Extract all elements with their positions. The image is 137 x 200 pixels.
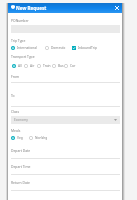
staticText: Car: [70, 64, 76, 68]
button[interactable]: Air: [23, 64, 35, 68]
staticText: Class: [11, 109, 20, 114]
staticText: To: [11, 93, 15, 98]
staticText: PONumber: [11, 18, 29, 23]
staticText: Depart Time: [11, 164, 31, 169]
staticText: New Request: [16, 5, 47, 11]
staticText: InboundTrip: [78, 46, 97, 50]
button[interactable]: InboundTrip: [71, 46, 97, 50]
staticText: Economy: [14, 118, 29, 122]
staticText: International: [17, 46, 37, 50]
staticText: Depart Date: [11, 148, 31, 153]
button[interactable]: Veg: [10, 136, 23, 140]
staticText: Bus: [58, 64, 64, 68]
staticText: Domestic: [51, 46, 66, 50]
staticText: All: [18, 64, 22, 68]
button[interactable]: [8, 145, 122, 159]
button[interactable]: Economy: [14, 116, 117, 124]
button[interactable]: [8, 177, 122, 191]
staticText: Meals: [11, 128, 21, 133]
button[interactable]: NonVeg: [28, 136, 48, 140]
staticText: Transport Type: [11, 54, 35, 59]
staticText: Veg: [17, 136, 23, 140]
button[interactable]: Close: [111, 3, 122, 13]
staticText: Trip Type: [11, 38, 26, 43]
staticText: From: [11, 74, 20, 79]
button[interactable]: Car: [63, 64, 76, 68]
button[interactable]: International: [10, 46, 37, 50]
staticText: Return Date: [11, 180, 30, 185]
staticText: Train: [43, 64, 51, 68]
staticText: Air: [30, 64, 35, 68]
button[interactable]: Train: [36, 64, 51, 68]
button[interactable]: All: [11, 64, 22, 68]
button[interactable]: [8, 71, 122, 85]
button[interactable]: Domestic: [44, 46, 66, 50]
button[interactable]: Bus: [51, 64, 64, 68]
staticText: NonVeg: [35, 136, 48, 140]
button[interactable]: [8, 161, 122, 175]
